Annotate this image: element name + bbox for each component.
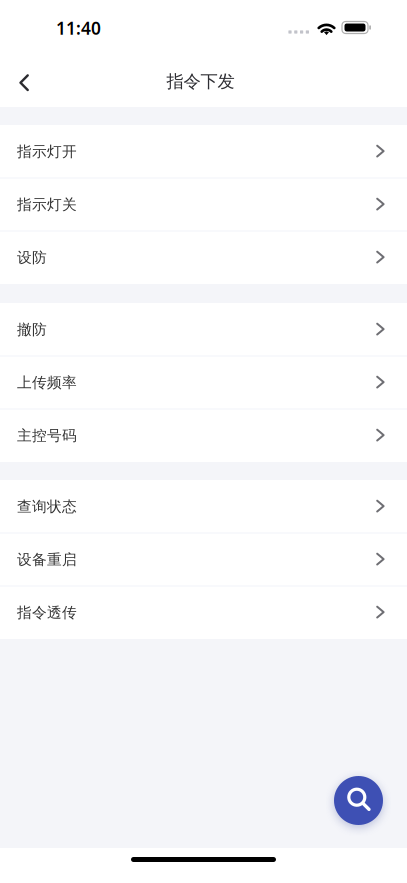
button[interactable]: 主控号码 bbox=[0, 409, 407, 462]
staticText: 指令下发 bbox=[166, 71, 234, 92]
staticText: 撤防 bbox=[17, 320, 47, 338]
staticText: 指示灯开 bbox=[17, 142, 77, 160]
button[interactable]: 查询状态 bbox=[0, 480, 407, 533]
button[interactable]: 撤防 bbox=[0, 303, 407, 356]
button[interactable]: 指示灯关 bbox=[0, 178, 407, 231]
button[interactable]: 上传频率 bbox=[0, 356, 407, 409]
button[interactable]: Search bbox=[334, 776, 383, 825]
staticText: 11:40 bbox=[56, 16, 101, 39]
staticText: 设备重启 bbox=[17, 550, 77, 568]
staticText: 查询状态 bbox=[17, 497, 77, 515]
button[interactable]: 设防 bbox=[0, 231, 407, 284]
staticText: 主控号码 bbox=[17, 426, 77, 444]
staticText: 指令透传 bbox=[17, 603, 77, 621]
button[interactable]: 设备重启 bbox=[0, 533, 407, 586]
button[interactable]: 指令透传 bbox=[0, 586, 407, 639]
button[interactable]: Back bbox=[2, 58, 46, 102]
staticText: 设防 bbox=[17, 248, 47, 266]
staticText: 上传频率 bbox=[17, 373, 77, 391]
staticText: 指示灯关 bbox=[17, 195, 77, 213]
button[interactable]: 指示灯开 bbox=[0, 125, 407, 178]
